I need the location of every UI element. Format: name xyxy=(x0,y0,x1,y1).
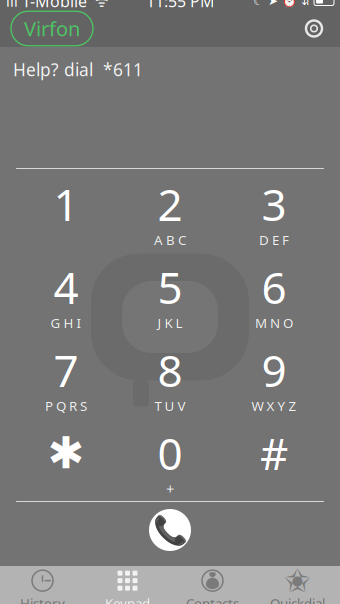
staticText: Keypad xyxy=(105,594,150,604)
staticText: ☾ ➤ ⏰ ⇵ xyxy=(253,0,311,8)
staticText: 8 xyxy=(157,341,182,399)
staticText: M N O xyxy=(255,314,293,332)
button[interactable]: Settings xyxy=(299,13,329,43)
button[interactable]: 0 xyxy=(118,418,222,501)
staticText: 📞 xyxy=(152,514,187,546)
staticText: 9 xyxy=(261,341,286,399)
button[interactable]: ✱ xyxy=(14,418,118,501)
staticText: Quickdial xyxy=(270,594,325,604)
staticText: Virfon xyxy=(24,15,80,42)
staticText: A B C xyxy=(154,231,186,249)
staticText: ᯤ xyxy=(87,0,108,11)
staticText: # xyxy=(260,424,288,482)
button[interactable]: Call xyxy=(141,502,199,558)
button[interactable]: 9 xyxy=(222,335,326,418)
button[interactable]: ✬ xyxy=(255,566,340,604)
staticText: History xyxy=(20,594,65,604)
staticText: W X Y Z xyxy=(251,397,296,415)
staticText: 5 xyxy=(157,258,182,316)
staticText: P Q R S xyxy=(45,397,87,415)
staticText: 0 xyxy=(157,424,182,482)
staticText: Help? dial *611 xyxy=(13,58,143,81)
staticText: + xyxy=(166,479,174,498)
staticText: Contacts xyxy=(186,594,239,604)
button[interactable]: History xyxy=(0,566,85,604)
button[interactable]: 2 xyxy=(118,169,222,252)
staticText: J K L xyxy=(157,314,182,332)
staticText: ıll xyxy=(6,0,18,11)
button[interactable]: # xyxy=(222,418,326,501)
staticText: 3 xyxy=(261,175,286,233)
staticText: G H I xyxy=(50,314,81,332)
button[interactable]: 3 xyxy=(222,169,326,252)
staticText: T U V xyxy=(154,397,185,415)
staticText: D E F xyxy=(259,231,289,249)
button[interactable]: 5 xyxy=(118,252,222,335)
staticText: 4 xyxy=(53,258,78,316)
staticText: 7 xyxy=(53,341,78,399)
button[interactable]: 7 xyxy=(14,335,118,418)
button[interactable]: Keypad xyxy=(85,566,170,604)
staticText: ✱ xyxy=(47,428,84,478)
button[interactable]: 6 xyxy=(222,252,326,335)
button[interactable]: 8 xyxy=(118,335,222,418)
button[interactable]: Contacts xyxy=(170,566,255,604)
button[interactable]: 1 xyxy=(14,169,118,252)
staticText: 6 xyxy=(261,258,286,316)
staticText: ✬ xyxy=(284,562,311,599)
button[interactable]: 4 xyxy=(14,252,118,335)
staticText: 2 xyxy=(157,175,182,233)
staticText: T-Mobile xyxy=(18,0,87,12)
staticText: 11:55 PM xyxy=(146,0,215,12)
button[interactable]: Virfon xyxy=(11,11,93,46)
staticText: 1 xyxy=(53,175,78,233)
